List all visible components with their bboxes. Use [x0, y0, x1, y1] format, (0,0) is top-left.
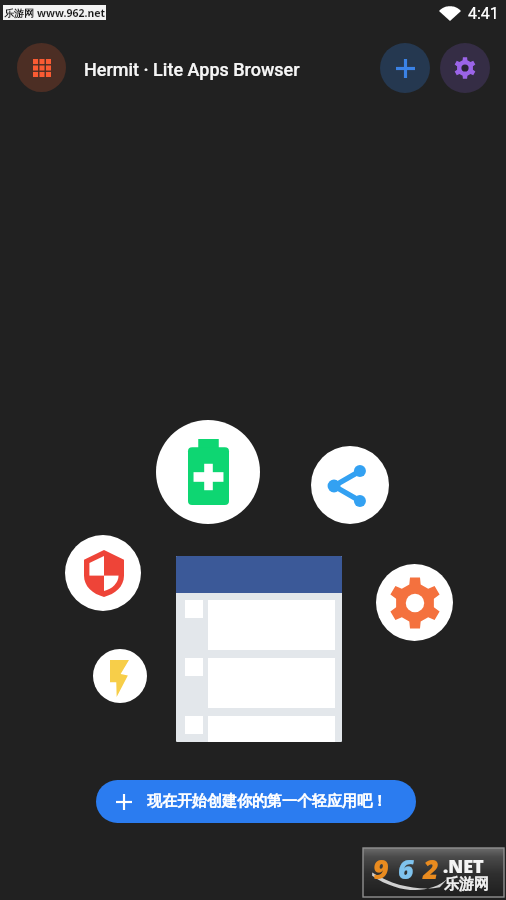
staticText: .NET	[443, 854, 484, 879]
staticText: 乐游网	[444, 875, 489, 894]
button[interactable]: Create lite app	[380, 43, 430, 93]
button[interactable]: 现在开始创建你的第一个轻应用吧！	[96, 780, 416, 823]
staticText: Hermit · Lite Apps Browser	[84, 59, 300, 80]
button[interactable]: Settings	[440, 43, 490, 93]
staticText: 9	[373, 850, 398, 887]
staticText: 6	[398, 850, 423, 887]
staticText: 现在开始创建你的第一个轻应用吧！	[147, 792, 387, 811]
staticText: 4:41	[468, 4, 499, 23]
staticText: 2	[423, 850, 448, 887]
staticText: 乐游网	[4, 7, 34, 20]
button[interactable]: Apps	[17, 43, 66, 92]
staticText: www.962.net	[37, 6, 106, 20]
